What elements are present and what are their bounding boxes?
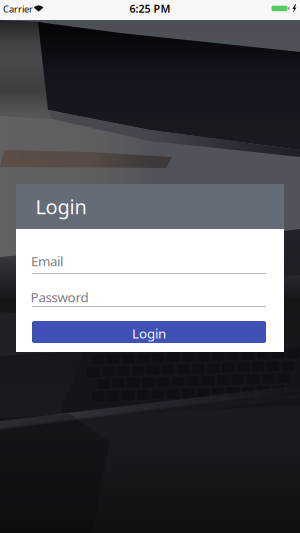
staticText: Password: [30, 288, 88, 306]
staticText: Carrier: [3, 3, 33, 15]
staticText: Email: [31, 252, 63, 270]
button[interactable]: Login: [32, 321, 266, 343]
staticText: Login: [35, 193, 86, 220]
button[interactable]: Email: [32, 247, 266, 274]
button[interactable]: Password: [32, 280, 266, 307]
staticText: 6:25 PM: [129, 2, 170, 16]
staticText: Login: [132, 324, 166, 342]
